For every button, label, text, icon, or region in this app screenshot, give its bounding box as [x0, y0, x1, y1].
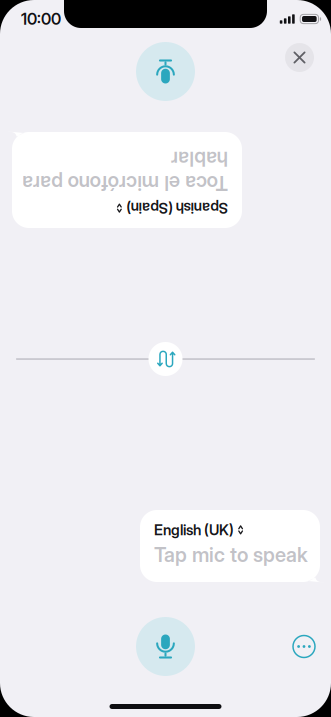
staticText: Tap mic to speak — [154, 543, 308, 567]
button[interactable]: Spanish microphone — [136, 42, 195, 101]
button[interactable]: Swap languages — [148, 342, 182, 376]
button[interactable]: More options — [287, 629, 321, 663]
button[interactable]: English microphone — [136, 617, 195, 676]
staticText: 10:00 — [21, 9, 61, 29]
button[interactable]: Close — [285, 43, 314, 72]
staticText: English (UK) — [154, 521, 234, 539]
button[interactable]: English (UK) — [154, 521, 243, 539]
staticText: Toca el micrófono para hablar — [26, 165, 232, 213]
